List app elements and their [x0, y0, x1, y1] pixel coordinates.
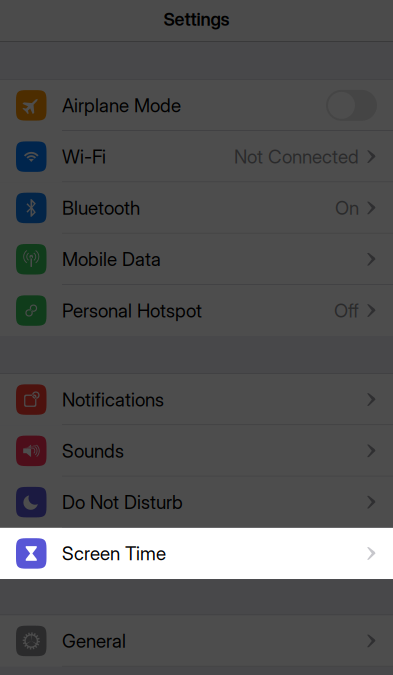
button[interactable]: Personal Hotspot	[0, 285, 393, 336]
staticText: Personal Hotspot	[62, 299, 202, 322]
button[interactable]: Notifications	[0, 374, 393, 425]
staticText: Notifications	[62, 388, 164, 411]
button[interactable]: Mobile Data	[0, 234, 393, 285]
button[interactable]: Bluetooth	[0, 182, 393, 234]
button[interactable]: General	[0, 615, 393, 667]
staticText: On	[335, 197, 359, 219]
staticText: Airplane Mode	[62, 94, 181, 117]
staticText: Settings	[163, 8, 229, 30]
button[interactable]: Sounds	[0, 425, 393, 476]
staticText: Off	[334, 299, 359, 322]
staticText: Screen Time	[62, 542, 166, 565]
staticText: Bluetooth	[62, 197, 140, 219]
staticText: General	[62, 630, 126, 652]
staticText: Wi-Fi	[62, 145, 106, 168]
button[interactable]: Screen Time	[0, 528, 393, 579]
staticText: Do Not Disturb	[62, 491, 183, 513]
button[interactable]: Wi-Fi	[0, 131, 393, 182]
button[interactable]: Airplane Mode	[0, 80, 393, 131]
button[interactable]: Do Not Disturb	[0, 476, 393, 528]
staticText: Mobile Data	[62, 248, 161, 271]
staticText: Not Connected	[234, 145, 359, 168]
staticText: Sounds	[62, 439, 124, 462]
